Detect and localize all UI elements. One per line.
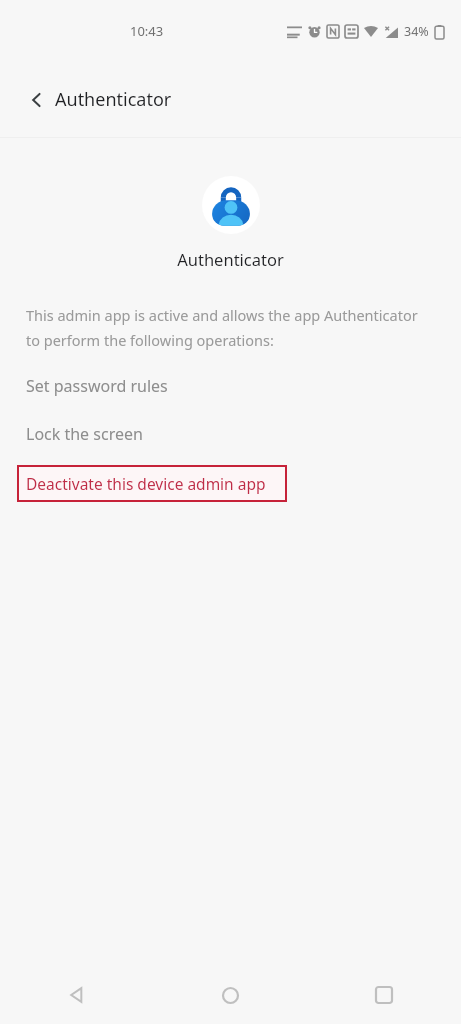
button[interactable]: Home — [153, 966, 307, 1024]
button[interactable]: Back — [0, 966, 153, 1024]
staticText: 10:43 — [130, 22, 164, 40]
button[interactable]: Back — [20, 83, 54, 117]
button[interactable]: Lock the screen — [0, 421, 461, 447]
staticText: Authenticator — [177, 248, 284, 270]
staticText: Deactivate this device admin app — [26, 473, 266, 494]
button[interactable]: Set password rules — [0, 373, 461, 399]
staticText: Set password rules — [26, 375, 168, 397]
staticText: Lock the screen — [26, 423, 143, 445]
button[interactable]: Recents — [307, 966, 461, 1024]
staticText: This admin app is active and allows the … — [26, 305, 435, 350]
staticText: Authenticator — [55, 87, 172, 112]
staticText: 34% — [404, 23, 429, 40]
button[interactable]: Deactivate this device admin app — [17, 465, 287, 502]
